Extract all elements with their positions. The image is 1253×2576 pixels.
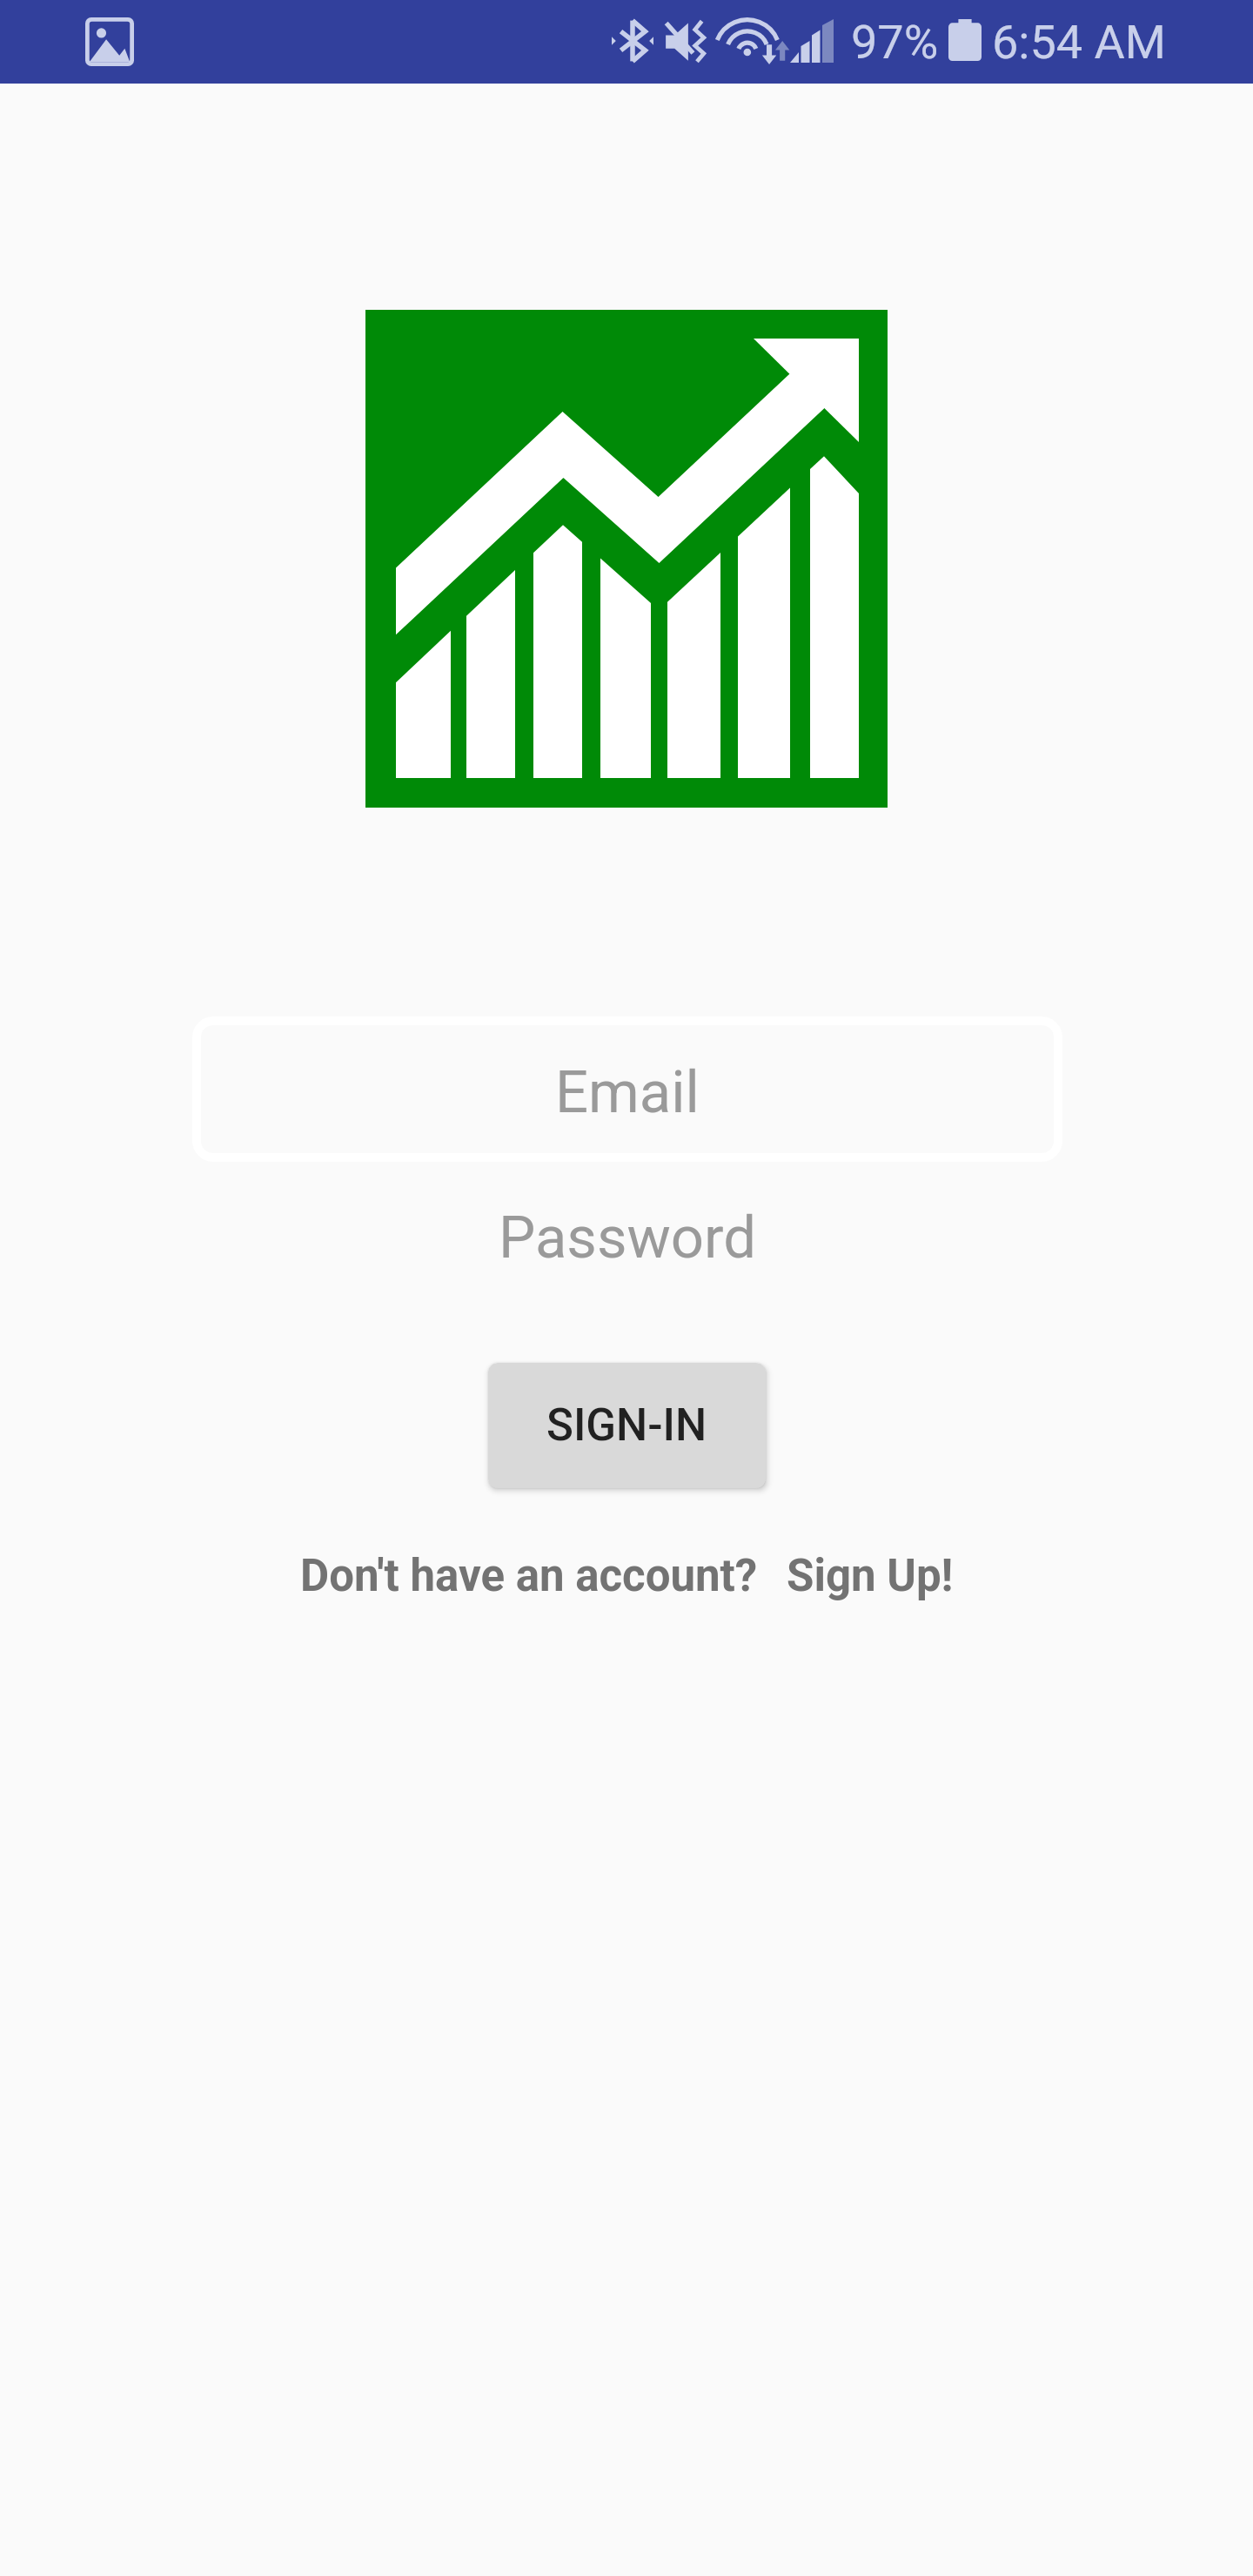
- staticText: 6:54 AM: [992, 15, 1166, 70]
- button[interactable]: Don't have an account?: [300, 1550, 758, 1602]
- staticText: 97%: [851, 15, 939, 70]
- staticText: SIGN-IN: [546, 1399, 707, 1452]
- button[interactable]: Sign Up!: [787, 1550, 954, 1602]
- staticText: Sign Up!: [787, 1550, 954, 1602]
- button[interactable]: Password: [192, 1177, 1062, 1298]
- button[interactable]: Email: [192, 1016, 1062, 1162]
- button[interactable]: SIGN-IN: [488, 1363, 766, 1488]
- other: Screenshot: [85, 17, 134, 66]
- staticText: Password: [499, 1204, 756, 1272]
- staticText: Email: [555, 1058, 700, 1127]
- staticText: Don't have an account?: [300, 1550, 758, 1602]
